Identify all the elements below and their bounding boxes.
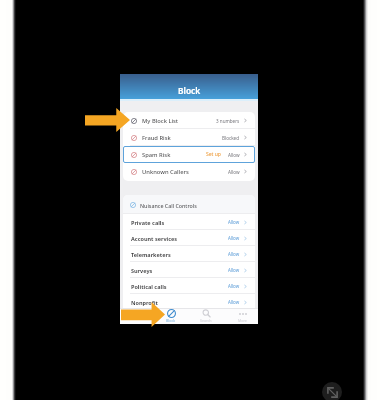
staticText: Allow bbox=[228, 235, 240, 241]
button[interactable]: Nuisance Call Controls bbox=[123, 195, 255, 213]
button[interactable]: More bbox=[228, 308, 256, 324]
staticText: Surveys bbox=[131, 267, 153, 274]
staticText: 3 numbers bbox=[216, 118, 240, 124]
staticText: Spam Risk bbox=[142, 151, 171, 159]
staticText: Block bbox=[178, 85, 201, 96]
staticText: Allow bbox=[228, 251, 240, 257]
button[interactable]: Account services bbox=[123, 230, 255, 246]
staticText: Nuisance Call Controls bbox=[140, 202, 197, 209]
button[interactable]: Fraud Risk bbox=[123, 129, 255, 146]
staticText: My Block List bbox=[142, 117, 179, 125]
button[interactable]: Spam Risk bbox=[123, 146, 255, 163]
staticText: Block bbox=[166, 318, 176, 323]
staticText: Blocked bbox=[222, 135, 240, 141]
staticText: Telemarketers bbox=[131, 251, 171, 258]
button[interactable]: Private calls bbox=[123, 214, 255, 230]
staticText: Account services bbox=[131, 235, 178, 242]
staticText: Nonprofit bbox=[131, 299, 158, 306]
staticText: Fraud Risk bbox=[142, 134, 171, 142]
button[interactable]: Unknown Callers bbox=[123, 163, 255, 180]
button[interactable]: Search bbox=[192, 308, 220, 324]
staticText: Private calls bbox=[131, 219, 165, 226]
staticText: Allow bbox=[228, 299, 240, 305]
button[interactable]: My Block List bbox=[123, 112, 255, 129]
button[interactable]: Block bbox=[157, 308, 185, 324]
staticText: Allow bbox=[228, 219, 240, 225]
button[interactable]: Nonprofit bbox=[123, 294, 255, 310]
staticText: Political calls bbox=[131, 283, 167, 290]
button[interactable]: Political calls bbox=[123, 278, 255, 294]
staticText: Allow bbox=[228, 267, 240, 273]
staticText: More bbox=[238, 318, 247, 323]
staticText: Allow bbox=[228, 152, 240, 158]
staticText: Search bbox=[200, 318, 212, 323]
button[interactable]: Telemarketers bbox=[123, 246, 255, 262]
staticText: Set up bbox=[206, 151, 221, 158]
button[interactable]: Fullscreen bbox=[322, 382, 342, 400]
staticText: Allow bbox=[228, 283, 240, 289]
button[interactable]: Surveys bbox=[123, 262, 255, 278]
staticText: Allow bbox=[228, 169, 240, 175]
staticText: Unknown Callers bbox=[142, 168, 189, 176]
